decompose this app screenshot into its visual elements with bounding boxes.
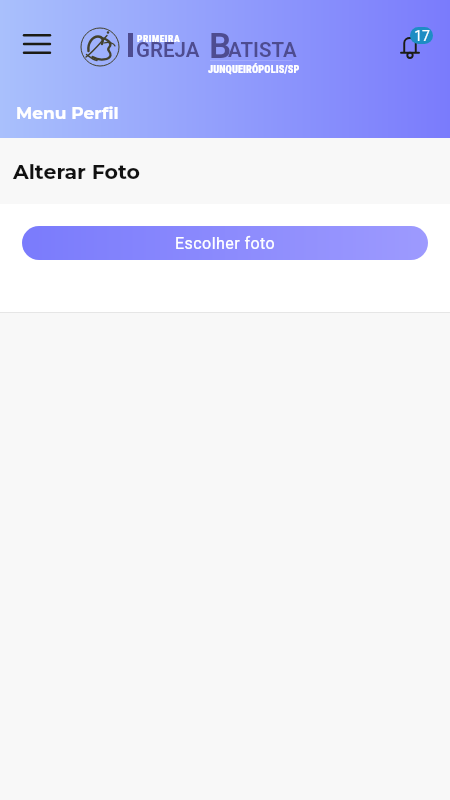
button[interactable]: Escolher foto [22, 226, 428, 260]
staticText: Alterar Foto [13, 159, 140, 184]
staticText: PRIMEIRA [137, 33, 181, 44]
staticText: ATISTA [228, 38, 297, 62]
staticText: 17 [414, 28, 430, 44]
staticText: Menu Perfil [16, 103, 119, 124]
button[interactable]: Notifications [388, 22, 436, 68]
staticText: GREJA [136, 38, 200, 62]
staticText: Escolher foto [175, 234, 276, 253]
staticText: JUNQUEIRÓPOLIS/SP [208, 63, 300, 75]
staticText: B [209, 26, 232, 67]
button[interactable]: Menu [15, 22, 59, 66]
